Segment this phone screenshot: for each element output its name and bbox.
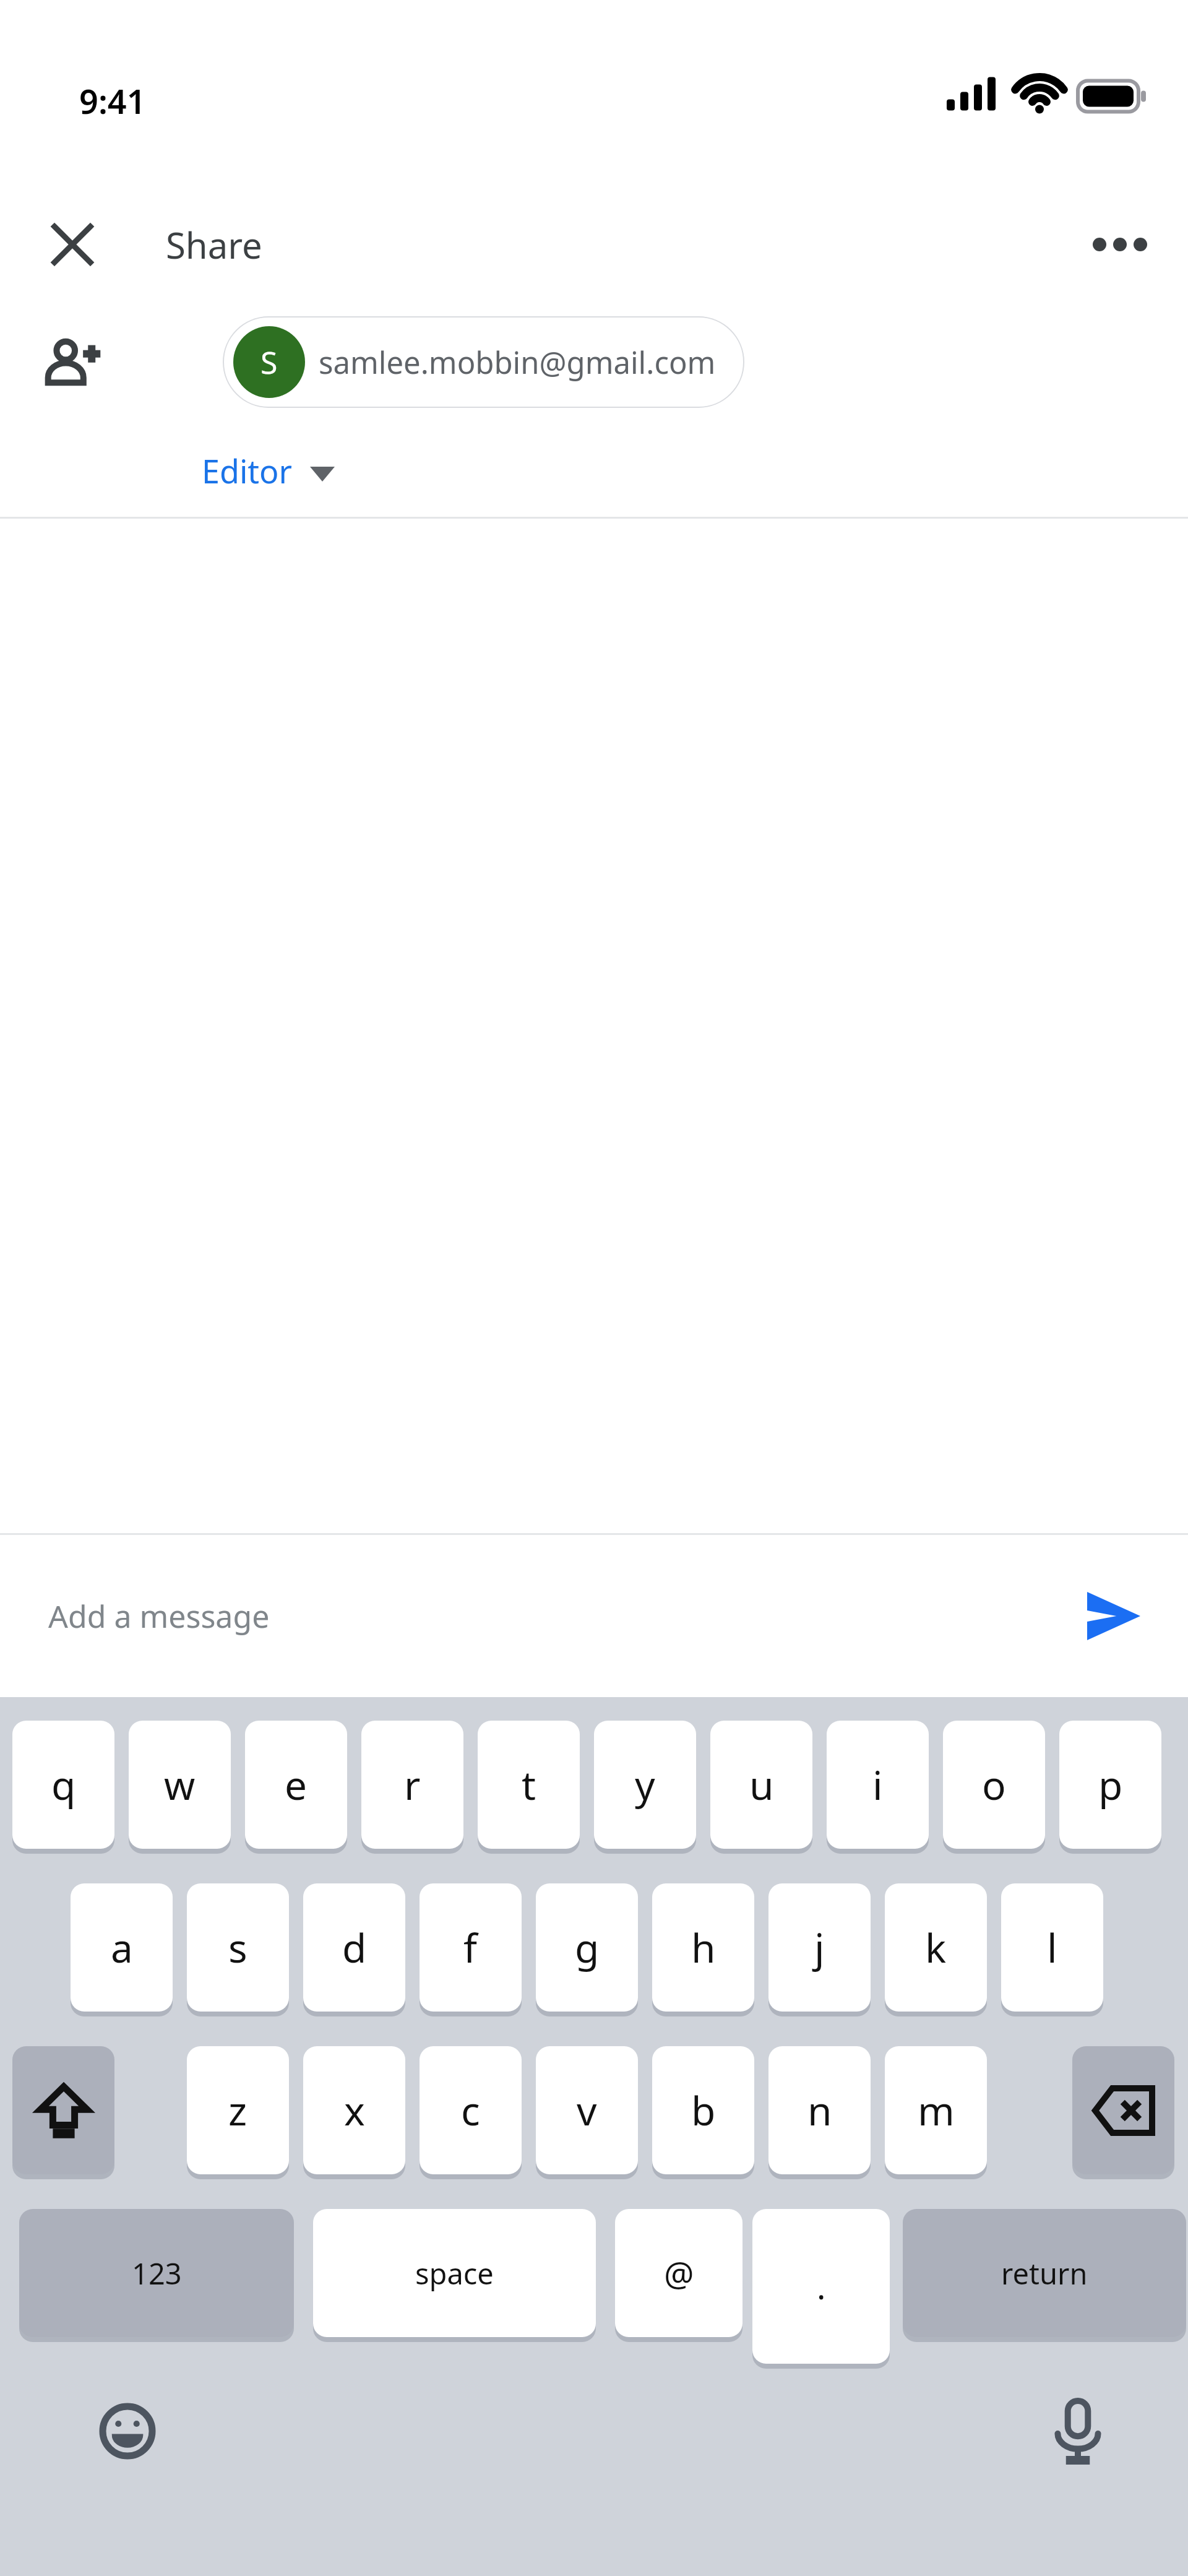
staticText: w (164, 1758, 196, 1812)
staticText: h (691, 1921, 716, 1974)
button[interactable]: t (478, 1721, 580, 1849)
button[interactable]: 123 (19, 2209, 294, 2337)
staticText: i (872, 1758, 883, 1812)
button[interactable]: Emoji (88, 2392, 167, 2471)
button[interactable]: e (245, 1721, 347, 1849)
button[interactable]: y (594, 1721, 696, 1849)
button[interactable]: g (536, 1883, 638, 2012)
button[interactable]: Voice input (1038, 2392, 1117, 2471)
staticText: q (51, 1758, 76, 1812)
staticText: r (404, 1758, 421, 1812)
staticText: y (635, 1758, 655, 1812)
staticText: x (344, 2083, 365, 2137)
button[interactable]: b (652, 2046, 754, 2174)
staticText: . (817, 2263, 826, 2309)
button[interactable]: Shift (12, 2046, 114, 2174)
staticText: v (577, 2083, 597, 2137)
button[interactable]: d (303, 1883, 405, 2012)
button[interactable]: k (885, 1883, 987, 2012)
button[interactable]: r (361, 1721, 463, 1849)
staticText: u (749, 1758, 774, 1812)
staticText: f (463, 1921, 478, 1974)
button[interactable]: o (943, 1721, 1045, 1849)
staticText: z (228, 2083, 247, 2137)
button[interactable]: c (420, 2046, 522, 2174)
button[interactable]: h (652, 1883, 754, 2012)
button[interactable]: Close (38, 210, 106, 279)
button[interactable]: l (1001, 1883, 1103, 2012)
staticText: t (522, 1758, 536, 1812)
staticText: c (461, 2083, 480, 2137)
button[interactable]: j (768, 1883, 871, 2012)
button[interactable]: space (313, 2209, 596, 2337)
staticText: samlee.mobbin@gmail.com (319, 342, 716, 383)
button[interactable]: m (885, 2046, 987, 2174)
staticText: space (415, 2254, 494, 2293)
button[interactable]: a (71, 1883, 173, 2012)
button[interactable]: return (903, 2209, 1186, 2337)
staticText: d (342, 1921, 367, 1974)
staticText: l (1047, 1921, 1057, 1974)
button[interactable]: Add people (36, 325, 110, 399)
staticText: S (260, 341, 278, 383)
staticText: b (691, 2083, 716, 2137)
button[interactable]: x (303, 2046, 405, 2174)
button[interactable]: i (827, 1721, 929, 1849)
button[interactable]: @ (615, 2209, 742, 2337)
staticText: Share (166, 220, 262, 269)
staticText: a (111, 1921, 133, 1974)
button[interactable]: p (1059, 1721, 1161, 1849)
staticText: o (982, 1758, 1006, 1812)
staticText: m (918, 2083, 955, 2137)
button[interactable]: n (768, 2046, 871, 2174)
button[interactable]: q (12, 1721, 114, 1849)
button[interactable]: More options (1083, 207, 1157, 282)
staticText: j (814, 1921, 825, 1974)
button[interactable]: S (223, 316, 744, 408)
staticText: s (228, 1921, 247, 1974)
staticText: e (285, 1758, 308, 1812)
button[interactable]: Backspace (1072, 2046, 1174, 2174)
staticText: n (807, 2083, 832, 2137)
staticText: return (1001, 2254, 1088, 2293)
staticText: k (925, 1921, 947, 1974)
button[interactable]: s (187, 1883, 289, 2012)
staticText: 123 (132, 2254, 182, 2293)
button[interactable]: u (710, 1721, 812, 1849)
button[interactable]: z (187, 2046, 289, 2174)
staticText: Editor (202, 449, 293, 493)
button[interactable]: f (420, 1883, 522, 2012)
button[interactable]: w (129, 1721, 231, 1849)
button[interactable]: Send (1070, 1573, 1157, 1659)
staticText: p (1098, 1758, 1123, 1812)
button[interactable]: Editor (187, 438, 350, 504)
button[interactable]: . (752, 2209, 890, 2364)
staticText: 9:41 (79, 78, 146, 124)
staticText: Add a message (48, 1595, 270, 1637)
button[interactable]: v (536, 2046, 638, 2174)
staticText: @ (664, 2250, 694, 2296)
staticText: g (575, 1921, 600, 1974)
